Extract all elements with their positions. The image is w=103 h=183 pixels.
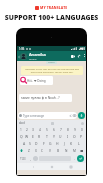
button[interactable]: Back — [31, 164, 36, 169]
staticText: 1:06 — [19, 47, 25, 51]
button[interactable]: S — [27, 140, 33, 147]
button[interactable]: D — [33, 140, 40, 147]
staticText: 1 — [20, 128, 22, 132]
button[interactable]: X — [32, 147, 39, 154]
staticText: E — [32, 134, 34, 139]
button[interactable]: M — [70, 147, 78, 154]
button[interactable]: Type a message — [18, 112, 77, 119]
button[interactable]: N — [62, 147, 70, 154]
button[interactable]: R — [36, 133, 43, 140]
button[interactable]: Symbols — [19, 155, 27, 162]
button[interactable]: Enter — [77, 155, 84, 162]
button[interactable]: 7 — [57, 126, 64, 133]
button[interactable]: J — [61, 140, 68, 147]
button[interactable]: K — [68, 140, 75, 147]
button[interactable]: I — [64, 133, 71, 140]
staticText: 9 — [74, 128, 76, 132]
button[interactable]: Back — [17, 55, 20, 58]
button[interactable]: 2 — [24, 126, 30, 133]
staticText: ?123 — [20, 157, 26, 161]
staticText: Q — [20, 134, 23, 139]
staticText: J — [64, 141, 65, 146]
button[interactable]: C — [39, 147, 46, 154]
staticText: W — [25, 134, 29, 139]
button[interactable]: L — [75, 140, 82, 147]
button[interactable]: Period — [72, 155, 76, 162]
button[interactable]: Q — [18, 133, 24, 140]
button[interactable]: Backspace — [78, 147, 85, 154]
button[interactable]: P — [78, 133, 85, 140]
button[interactable]: F — [40, 140, 47, 147]
button[interactable]: G — [47, 140, 54, 147]
staticText: O — [73, 134, 76, 139]
button[interactable]: B — [54, 147, 62, 154]
button[interactable]: Recents — [68, 164, 73, 169]
staticText: P — [80, 134, 83, 139]
staticText: H — [56, 141, 59, 146]
staticText: 2 — [26, 128, 28, 132]
button[interactable]: O — [71, 133, 78, 140]
staticText: online — [29, 57, 37, 60]
staticText: Y — [53, 134, 55, 139]
staticText: abcd — [19, 121, 25, 125]
staticText: 3 — [32, 128, 34, 132]
staticText: какие нужны ф в Noah ..? — [21, 96, 60, 100]
staticText: MY TRANSLATE — [40, 5, 68, 10]
button[interactable]: V — [46, 147, 54, 154]
staticText: I — [67, 134, 69, 139]
staticText: 8 — [67, 128, 69, 132]
button[interactable]: 5 — [43, 126, 50, 133]
button[interactable]: Z — [25, 147, 32, 154]
button[interactable]: 8 — [64, 126, 71, 133]
staticText: M — [73, 149, 76, 153]
staticText: 5 — [46, 128, 48, 132]
button[interactable]: Home — [49, 164, 54, 169]
staticText: F — [43, 141, 45, 146]
staticText: Messages to this chat and calls are now … — [23, 68, 81, 74]
button[interactable]: Shift — [18, 147, 25, 154]
staticText: N — [65, 149, 68, 153]
staticText: 4 — [39, 128, 41, 132]
button[interactable]: Call — [76, 53, 82, 59]
button[interactable]: Video call — [70, 53, 76, 59]
staticText: 7 — [60, 128, 62, 132]
staticText: . — [74, 157, 75, 161]
button[interactable]: Voice message — [78, 112, 85, 119]
staticText: Z — [28, 149, 30, 153]
staticText: TODAY — [48, 61, 55, 64]
staticText: X — [35, 149, 37, 153]
staticText: K — [70, 141, 73, 146]
staticText: D — [35, 141, 38, 146]
staticText: , — [30, 157, 31, 161]
button[interactable]: More options — [82, 54, 86, 58]
staticText: C — [41, 149, 44, 153]
button[interactable]: Comma — [28, 155, 32, 162]
button[interactable]: 9 — [71, 126, 78, 133]
button[interactable]: Y — [50, 133, 57, 140]
button[interactable]: 0 — [78, 126, 85, 133]
staticText: SUPPORT 100+ LANGUAGES — [0, 13, 103, 22]
button[interactable]: 6 — [50, 126, 57, 133]
staticText: Anamika — [29, 52, 46, 57]
button[interactable]: 1 — [18, 126, 24, 133]
staticText: Hiii.. ❤ Doing nice..? — [27, 79, 52, 83]
button[interactable]: Emoji — [33, 156, 38, 161]
button[interactable]: H — [54, 140, 61, 147]
staticText: Type a message — [23, 114, 44, 118]
button[interactable]: 3 — [30, 126, 36, 133]
button[interactable]: A — [21, 140, 27, 147]
staticText: R — [38, 134, 41, 139]
staticText: T — [46, 134, 48, 139]
staticText: U — [59, 134, 62, 139]
staticText: A — [23, 141, 26, 146]
button[interactable]: T — [43, 133, 50, 140]
staticText: S — [29, 141, 31, 146]
button[interactable]: W — [24, 133, 30, 140]
staticText: 0 — [81, 128, 83, 132]
staticText: V — [49, 149, 51, 153]
button[interactable]: E — [30, 133, 36, 140]
button[interactable]: U — [57, 133, 64, 140]
staticText: B — [57, 149, 60, 153]
button[interactable]: 4 — [36, 126, 43, 133]
